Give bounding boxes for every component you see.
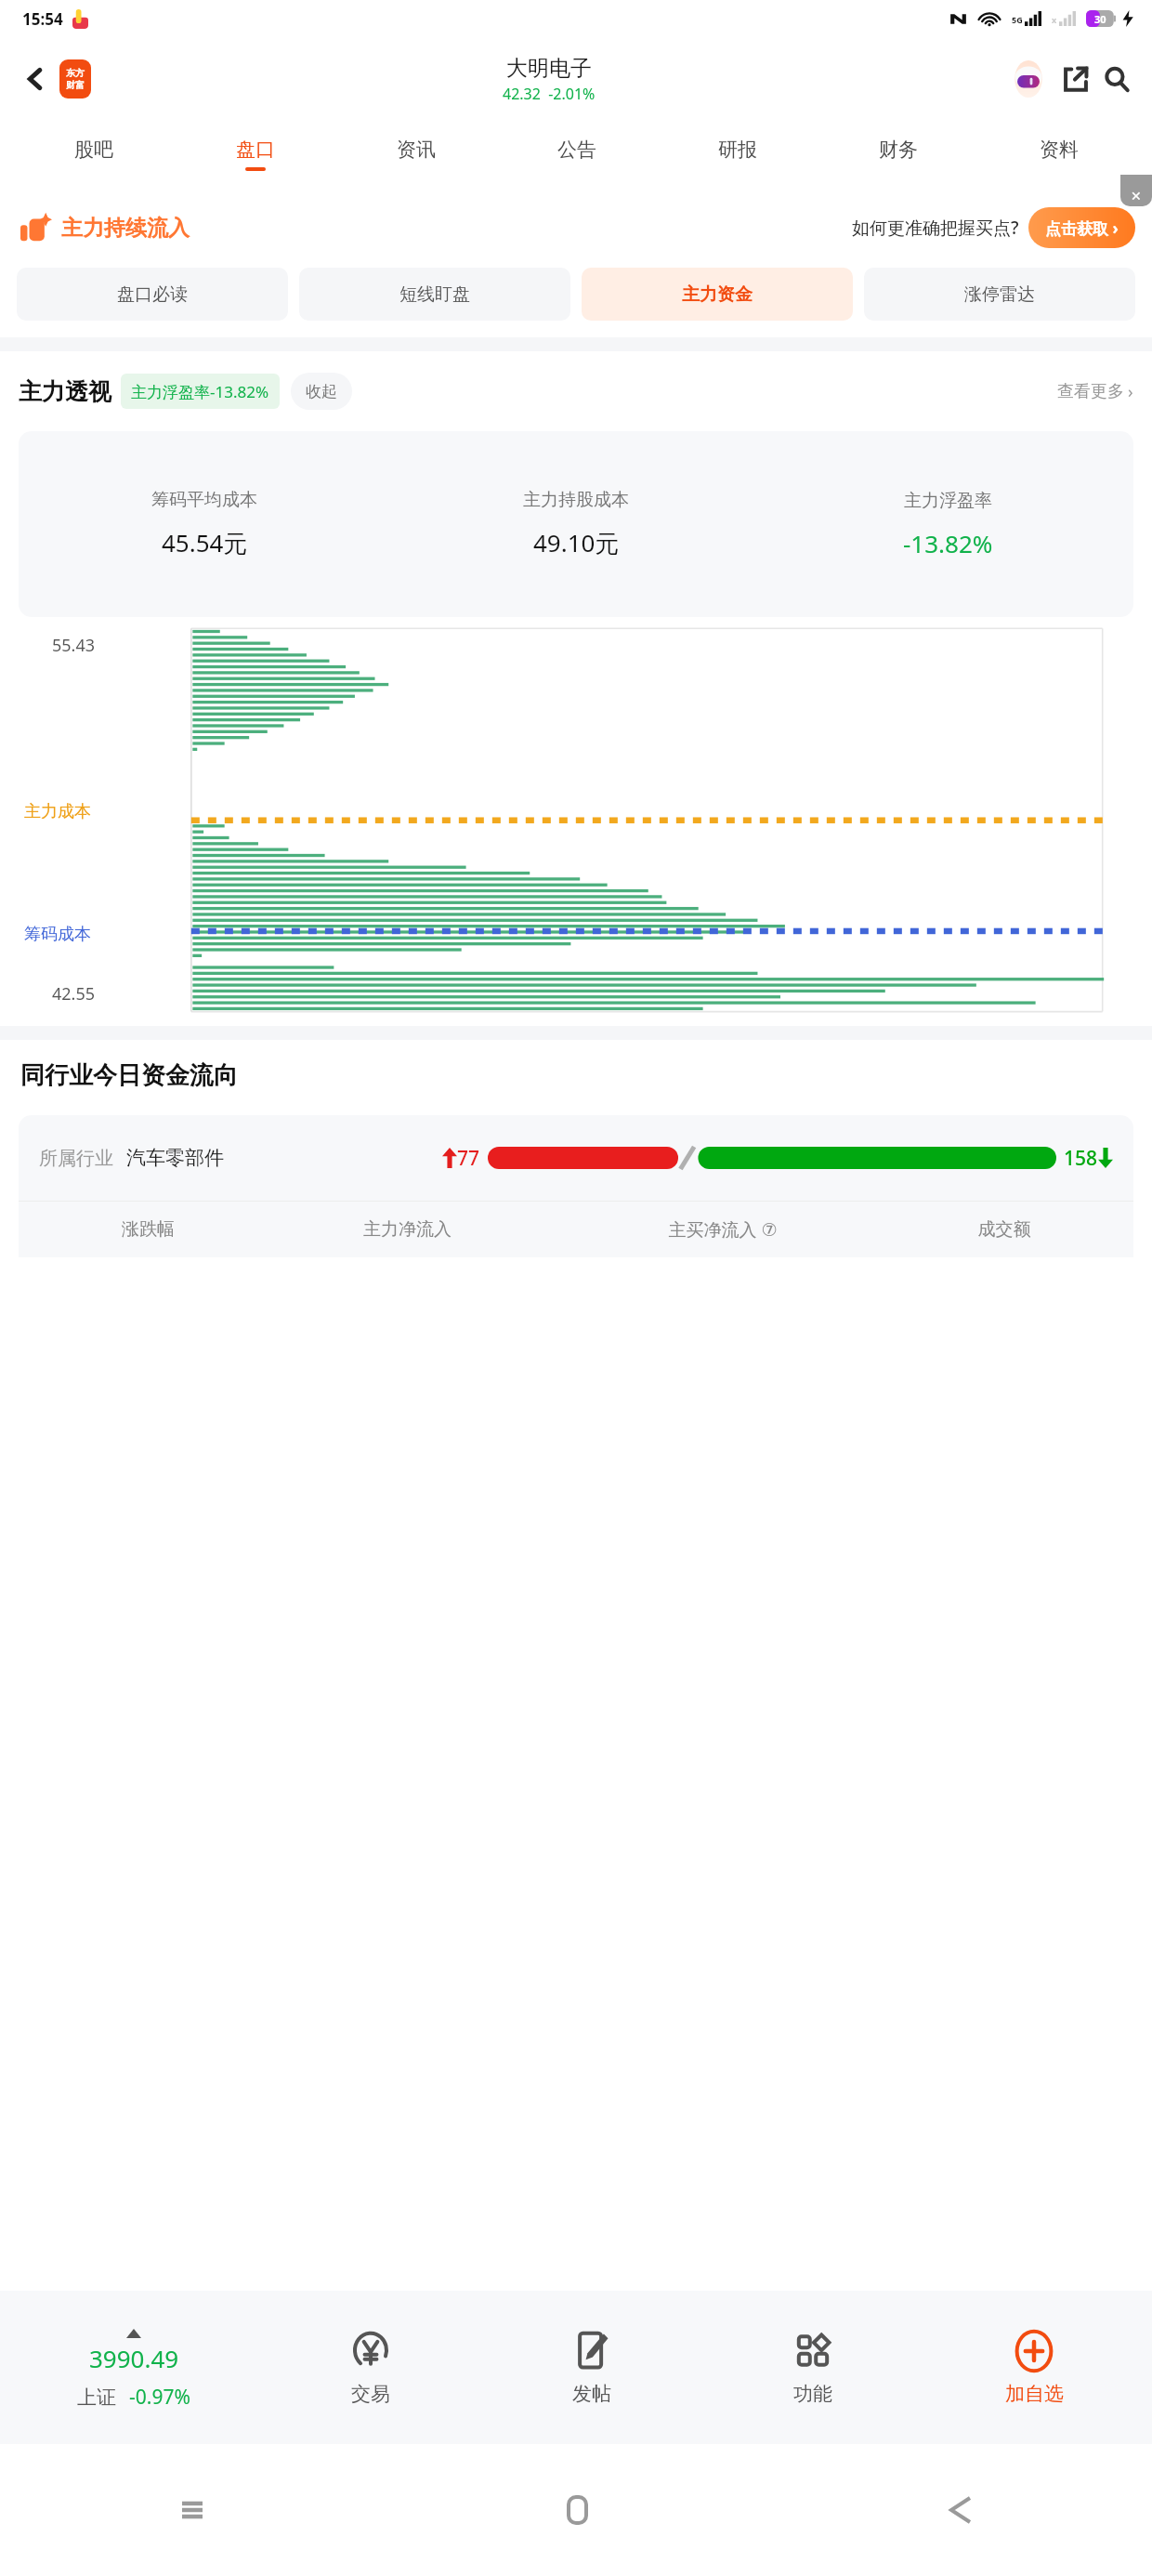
staticText: 资料 <box>1040 138 1079 162</box>
button[interactable]: 短线盯盘 <box>299 268 570 321</box>
staticText: 上证 <box>77 2385 116 2410</box>
staticText: 49.10元 <box>533 526 620 559</box>
button[interactable]: 财务 <box>818 121 978 188</box>
button[interactable]: Home <box>556 2489 598 2531</box>
staticText: 42.55 <box>52 982 96 1005</box>
staticText: 公告 <box>557 138 596 162</box>
staticText: 主力透视 <box>19 377 111 406</box>
button[interactable]: 加自选 <box>923 2291 1145 2444</box>
staticText: 发帖 <box>572 2382 611 2406</box>
staticText: 盘口 <box>236 138 275 162</box>
button[interactable]: Back <box>939 2489 982 2531</box>
staticText: 研报 <box>718 138 757 162</box>
button[interactable]: 所属行业 <box>19 1115 1133 1201</box>
button[interactable]: Search <box>1096 59 1137 99</box>
button[interactable]: 主力浮盈率-13.82% <box>121 374 280 409</box>
staticText: 所属行业 <box>39 1147 113 1170</box>
staticText: 筹码成本 <box>24 924 91 945</box>
staticText: 点击获取 › <box>1045 217 1119 239</box>
staticText: 收起 <box>306 382 337 401</box>
staticText: 如何更准确把握买点? <box>852 216 1019 240</box>
button[interactable]: Recent apps <box>171 2489 214 2531</box>
staticText: 3990.49 <box>89 2342 179 2374</box>
staticText: 主力资金 <box>682 283 753 306</box>
staticText: 汽车零部件 <box>126 1146 224 1170</box>
staticText: › <box>1128 380 1133 403</box>
staticText: 短线盯盘 <box>399 283 470 306</box>
staticText: 东方 <box>66 67 85 79</box>
staticText: 55.43 <box>52 634 96 657</box>
staticText: 30 <box>1094 12 1106 26</box>
button[interactable]: 发帖 <box>481 2291 702 2444</box>
staticText: 主力成本 <box>24 801 91 822</box>
staticText: 同行业今日资金流向 <box>20 1060 238 1091</box>
staticText: 5G <box>1012 14 1023 25</box>
button[interactable]: 盘口 <box>175 121 335 188</box>
staticText: 涨停雷达 <box>964 283 1035 306</box>
staticText: 主力持股成本 <box>523 489 629 511</box>
button[interactable]: Back <box>15 59 56 99</box>
staticText: 主力净流入 <box>261 1218 554 1241</box>
button[interactable]: 研报 <box>657 121 818 188</box>
staticText: 财务 <box>879 138 918 162</box>
staticText: 涨跌幅 <box>35 1218 261 1241</box>
button[interactable]: 资讯 <box>335 121 496 188</box>
button[interactable]: 股吧 <box>13 121 175 188</box>
button[interactable]: 交易 <box>260 2291 481 2444</box>
button[interactable]: 3990.49 <box>7 2291 260 2444</box>
staticText: -0.97% <box>129 2384 190 2411</box>
staticText: 主买净流入 ⑦ <box>554 1217 892 1242</box>
button[interactable]: 功能 <box>702 2291 923 2444</box>
staticText: 交易 <box>351 2382 390 2406</box>
button[interactable]: 查看更多 <box>1057 380 1133 403</box>
button[interactable]: 盘口必读 <box>17 268 288 321</box>
staticText: -13.82% <box>903 527 993 559</box>
staticText: 大明电子 <box>506 55 592 82</box>
button[interactable]: 涨停雷达 <box>864 268 1135 321</box>
button[interactable]: 筹码平均成本 <box>19 431 1133 617</box>
button[interactable]: 收起 <box>291 373 352 410</box>
staticText: 主力浮盈率-13.82% <box>131 381 269 402</box>
staticText: 财富 <box>66 79 85 91</box>
staticText: 158 <box>1064 1145 1098 1172</box>
button[interactable]: 东方财富 <box>59 59 91 99</box>
staticText: 查看更多 <box>1057 381 1124 402</box>
staticText: 主力持续流入 <box>61 215 190 242</box>
button[interactable]: 公告 <box>496 121 657 188</box>
staticText: 15:54 <box>22 8 63 30</box>
staticText: 成交额 <box>892 1218 1117 1241</box>
staticText: 功能 <box>793 2382 832 2406</box>
staticText: 资讯 <box>397 138 436 162</box>
staticText: 股吧 <box>74 138 113 162</box>
button[interactable]: AI assistant <box>1007 58 1050 100</box>
staticText: ✕ <box>1131 189 1142 204</box>
staticText: 42.32 -2.01% <box>503 84 596 104</box>
staticText: 筹码平均成本 <box>151 489 257 511</box>
button[interactable]: 资料 <box>978 121 1139 188</box>
staticText: 加自选 <box>1005 2382 1064 2406</box>
button[interactable]: 点击获取 › <box>1028 207 1135 248</box>
staticText: 77 <box>457 1145 480 1172</box>
staticText: 45.54元 <box>162 526 248 559</box>
button[interactable]: Close ad <box>1120 175 1152 206</box>
button[interactable]: 主力资金 <box>582 268 853 321</box>
staticText: 主力浮盈率 <box>904 490 992 512</box>
staticText: x <box>1052 14 1057 25</box>
staticText: 盘口必读 <box>117 283 188 306</box>
button[interactable]: Share <box>1055 59 1096 99</box>
